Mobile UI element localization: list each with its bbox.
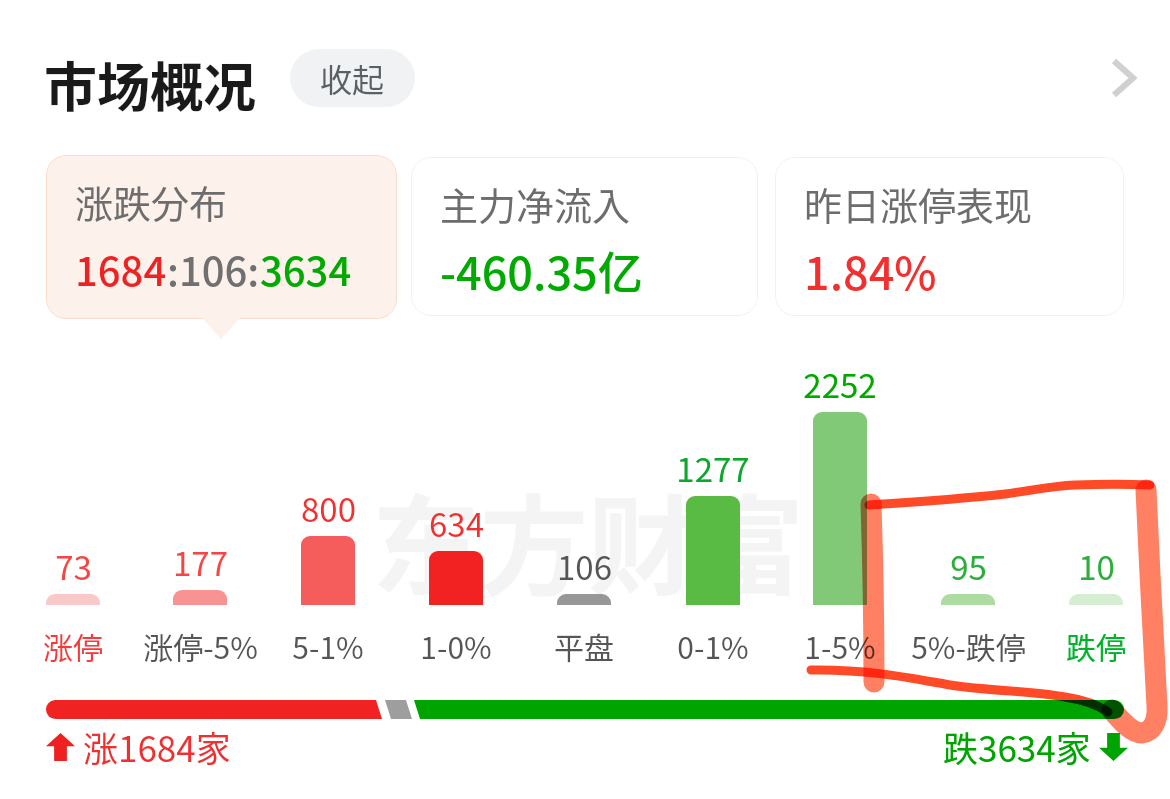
staticText: 平盘 <box>554 624 614 667</box>
staticText: 1277 <box>676 444 750 492</box>
staticText: 东方财富 <box>372 461 805 617</box>
button[interactable]: 涨1684家 <box>46 721 231 772</box>
staticText: 2252 <box>803 360 877 408</box>
staticText: 5%-跌停 <box>911 624 1026 667</box>
staticText: 1.84% <box>804 238 937 303</box>
staticText: 95 <box>950 542 987 590</box>
staticText: 跌停 <box>1066 624 1126 667</box>
staticText: 涨停 <box>43 624 103 667</box>
staticText: 634 <box>429 499 484 547</box>
staticText: 0-1% <box>677 624 749 667</box>
staticText: :106: <box>167 240 260 298</box>
button[interactable]: 涨跌分布 <box>46 155 397 319</box>
staticText: 跌3634家 <box>943 721 1091 772</box>
staticText: 1684 <box>75 240 167 298</box>
staticText: 主力净流入 <box>440 176 631 231</box>
staticText: 106 <box>557 542 612 590</box>
staticText: 10 <box>1078 542 1115 590</box>
staticText: 市场概况 <box>44 46 256 123</box>
button[interactable]: 市场概况 <box>44 46 256 123</box>
staticText: 1-0% <box>420 624 492 667</box>
staticText: 5-1% <box>292 624 364 667</box>
staticText: 3634 <box>260 240 352 298</box>
staticText: 涨停-5% <box>143 624 258 667</box>
button[interactable]: 收起 <box>290 49 415 107</box>
staticText: 73 <box>55 542 92 590</box>
staticText: 涨跌分布 <box>75 174 228 229</box>
staticText: 177 <box>173 538 228 586</box>
button[interactable]: 跌3634家 <box>943 721 1128 772</box>
staticText: 1-5% <box>804 624 876 667</box>
staticText: -460.35亿 <box>440 238 643 303</box>
staticText: 涨1684家 <box>83 721 231 772</box>
button[interactable]: 展开更多 <box>1094 42 1156 114</box>
staticText: 昨日涨停表现 <box>804 176 1033 231</box>
button[interactable]: 主力净流入 <box>411 157 758 316</box>
staticText: 收起 <box>320 55 385 101</box>
staticText: 800 <box>301 484 356 532</box>
button[interactable]: 昨日涨停表现 <box>775 157 1124 316</box>
